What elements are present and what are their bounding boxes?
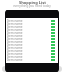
staticText: Item name bbox=[7, 22, 23, 25]
button[interactable]: Item name bbox=[6, 40, 58, 43]
button[interactable]: Item name bbox=[6, 46, 58, 49]
button[interactable]: Item name bbox=[6, 31, 58, 34]
staticText: Item name bbox=[7, 31, 23, 34]
staticText: Item name bbox=[7, 46, 23, 49]
button[interactable]: Item name bbox=[6, 25, 58, 28]
staticText: Item name bbox=[7, 34, 23, 37]
button[interactable]: Item name bbox=[6, 43, 58, 46]
staticText: Shopping List bbox=[19, 0, 46, 5]
staticText: Item name bbox=[7, 40, 23, 43]
button[interactable]: Item name bbox=[6, 49, 58, 52]
staticText: Item name bbox=[7, 52, 23, 55]
button[interactable]: Item name bbox=[6, 52, 58, 55]
staticText: Item name bbox=[7, 28, 23, 31]
staticText: Item name bbox=[7, 19, 23, 22]
staticText: Item name bbox=[7, 58, 23, 61]
button[interactable]: Item name bbox=[6, 22, 58, 25]
button[interactable]: Item name bbox=[6, 55, 58, 58]
staticText: Item name bbox=[7, 25, 23, 28]
button[interactable]: Item name bbox=[6, 34, 58, 37]
staticText: Item name bbox=[7, 37, 23, 40]
staticText: Item name bbox=[7, 55, 23, 58]
button[interactable]: Item name bbox=[6, 58, 58, 61]
button[interactable]: Item name bbox=[6, 37, 58, 40]
button[interactable]: Item name bbox=[6, 19, 58, 22]
button[interactable]: Item name bbox=[6, 28, 58, 31]
staticText: everything you need today bbox=[13, 4, 51, 8]
staticText: Item name bbox=[7, 49, 23, 52]
staticText: Item name bbox=[7, 43, 23, 46]
